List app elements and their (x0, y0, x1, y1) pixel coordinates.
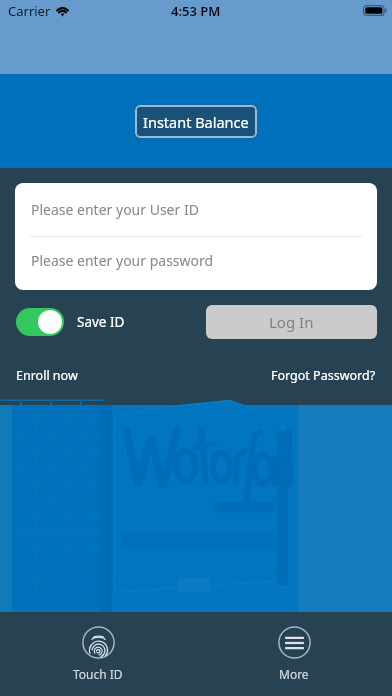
staticText: Please enter your password (31, 251, 214, 270)
button[interactable]: Instant Balance (135, 105, 257, 138)
button[interactable]: Touch ID (0, 612, 196, 696)
button[interactable]: Log In (206, 305, 377, 339)
staticText: 4:53 PM (171, 2, 221, 20)
staticText: Instant Balance (143, 112, 249, 132)
button[interactable]: Forgot Password? (261, 367, 392, 384)
staticText: Forgot Password? (271, 367, 376, 384)
button[interactable]: Enroll now (0, 367, 88, 384)
staticText: More (279, 666, 309, 682)
staticText: Log In (269, 312, 314, 332)
button[interactable]: Please enter your password (15, 237, 377, 290)
button[interactable]: More (196, 612, 392, 696)
staticText: Carrier (8, 2, 51, 20)
staticText: Enroll now (16, 367, 78, 384)
staticText: Save ID (77, 313, 125, 331)
staticText: Please enter your User ID (31, 200, 199, 219)
button[interactable]: Please enter your User ID (15, 183, 377, 236)
button[interactable]: Save ID (16, 308, 125, 336)
staticText: Touch ID (73, 666, 123, 682)
